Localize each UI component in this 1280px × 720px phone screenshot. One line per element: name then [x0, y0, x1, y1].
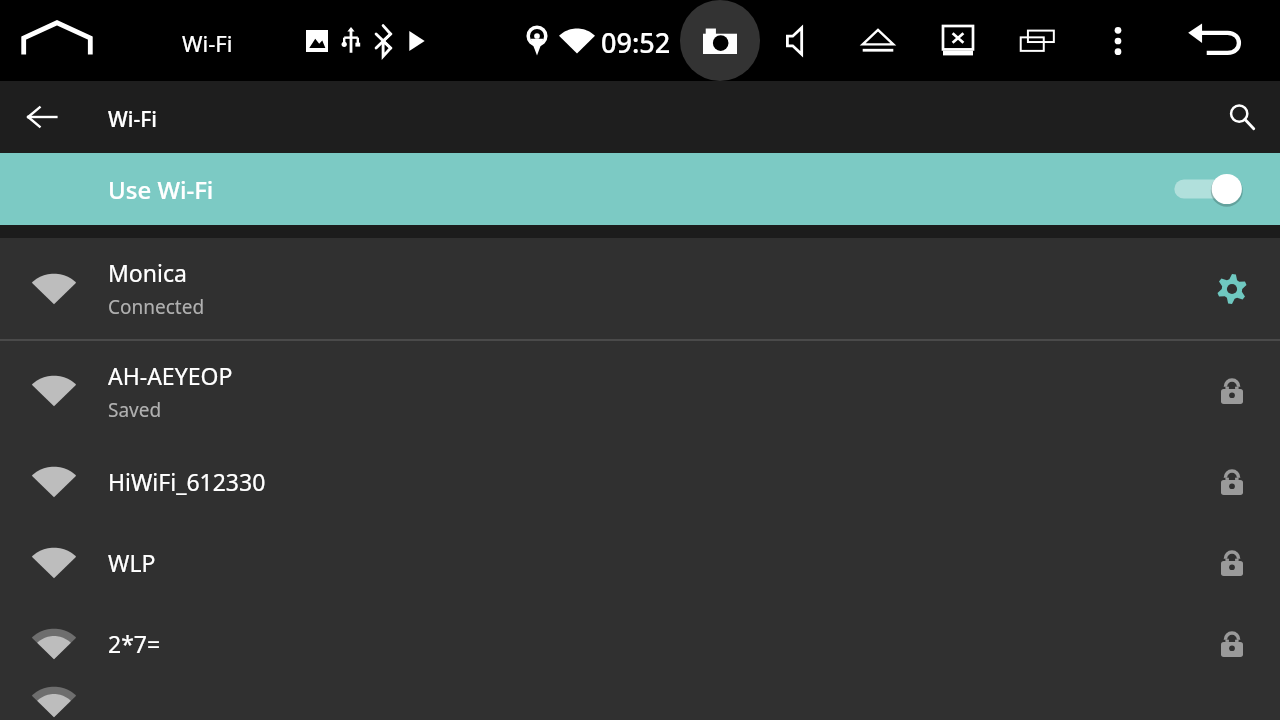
staticText: Use Wi-Fi	[108, 173, 214, 206]
staticText: Wi-Fi	[182, 28, 233, 58]
staticText: Monica	[108, 257, 187, 288]
staticText: AH-AEYEOP	[108, 360, 233, 391]
button[interactable]: Search	[1216, 93, 1268, 141]
staticText: 09:52	[601, 24, 671, 61]
button[interactable]: Screenshot	[680, 0, 760, 81]
button[interactable]: WLP	[0, 522, 1280, 603]
button[interactable]: HiWiFi_612330	[0, 441, 1280, 522]
button[interactable]: Home	[20, 16, 94, 64]
button[interactable]: More options	[1092, 18, 1144, 64]
button[interactable]: Eject	[850, 18, 906, 64]
button[interactable]: Monica	[0, 238, 1280, 339]
staticText: 2*7=	[108, 628, 161, 659]
button[interactable]: Disconnect display	[930, 18, 986, 64]
button[interactable]: Volume	[772, 18, 828, 64]
staticText: WLP	[108, 547, 156, 578]
staticText: Wi-Fi	[108, 105, 157, 134]
button[interactable]: Use Wi-Fi	[0, 153, 1280, 225]
staticText: HiWiFi_612330	[108, 466, 266, 497]
button[interactable]: 2*7=	[0, 603, 1280, 684]
button[interactable]: AH-AEYEOP	[0, 341, 1280, 441]
button[interactable]: Navigate up	[16, 93, 68, 141]
button[interactable]: Back	[1180, 14, 1252, 66]
button[interactable]: Recents	[1010, 18, 1066, 64]
staticText: Connected	[108, 294, 205, 320]
button[interactable]	[0, 684, 1280, 720]
button[interactable]: Network settings	[1205, 262, 1259, 316]
staticText: Saved	[108, 397, 162, 423]
